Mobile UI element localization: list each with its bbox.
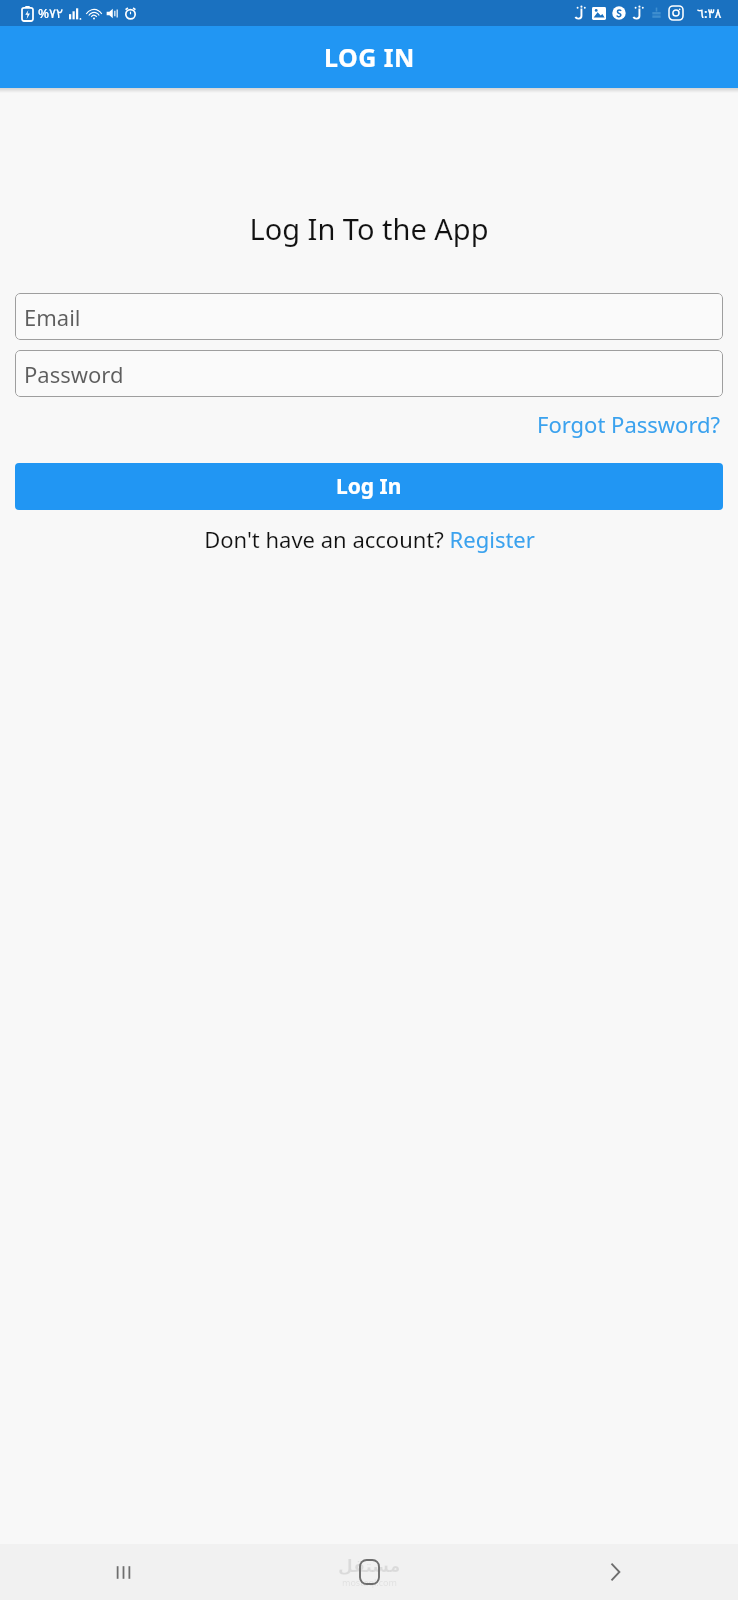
button[interactable]: Don't have an account? Register [15,524,723,554]
button[interactable]: Log In [15,463,723,510]
staticText: %٧٢ [38,4,64,22]
staticText: mostaql.com [342,1576,397,1588]
staticText: Password [24,359,124,389]
staticText: Don't have an account? Register [204,524,535,554]
button[interactable]: Recent apps [0,1544,246,1600]
button[interactable]: Email [15,293,723,340]
button[interactable]: Back [492,1544,738,1600]
staticText: LOG IN [324,40,415,74]
staticText: مستقل [338,1556,401,1576]
staticText: Forgot Password? [537,409,721,439]
staticText: ٦:٣٨ [697,4,722,22]
staticText: Log In To the App [15,209,723,248]
button[interactable]: Home [246,1544,492,1600]
button[interactable]: Forgot Password? [535,407,723,441]
button[interactable]: Password [15,350,723,397]
staticText: Email [24,302,81,332]
staticText: Log In [336,472,402,501]
